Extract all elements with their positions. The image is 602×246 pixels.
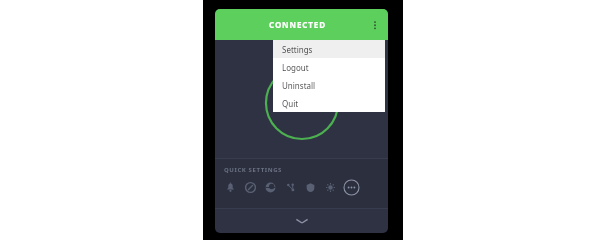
button[interactable]: Settings: [273, 40, 385, 58]
staticText: QUICK SETTINGS: [224, 166, 282, 174]
staticText: Settings: [282, 44, 313, 55]
button[interactable]: Globe: [262, 179, 278, 195]
staticText: Quit: [282, 98, 299, 109]
button[interactable]: More options: [366, 16, 384, 34]
staticText: CONNECTED: [269, 19, 326, 30]
button[interactable]: More quick settings: [342, 178, 360, 196]
button[interactable]: Quit: [273, 94, 385, 112]
button[interactable]: Logout: [273, 58, 385, 76]
button[interactable]: Network: [282, 179, 298, 195]
button[interactable]: Brightness: [322, 179, 338, 195]
button[interactable]: Security: [302, 179, 318, 195]
button[interactable]: Expand: [215, 209, 388, 233]
button[interactable]: Uninstall: [273, 76, 385, 94]
button[interactable]: Notifications: [222, 179, 238, 195]
button[interactable]: Do not disturb: [242, 179, 258, 195]
staticText: Logout: [282, 62, 309, 73]
staticText: Uninstall: [282, 80, 316, 91]
